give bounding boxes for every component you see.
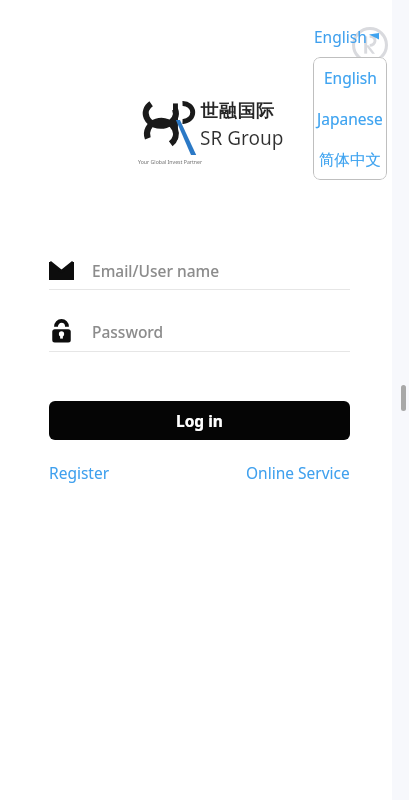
button[interactable]: English bbox=[313, 57, 387, 98]
other: Password bbox=[49, 320, 74, 343]
staticText: Password bbox=[92, 321, 164, 342]
button[interactable]: 简体中文 bbox=[313, 139, 387, 180]
staticText: Your Global Invest Partner bbox=[138, 158, 203, 165]
button[interactable]: Log in bbox=[49, 401, 350, 440]
staticText: English bbox=[324, 67, 377, 88]
button[interactable]: Japanese bbox=[313, 98, 387, 139]
button[interactable]: Online Service bbox=[246, 462, 350, 483]
staticText: 简体中文 bbox=[319, 150, 381, 170]
button[interactable]: Email bbox=[49, 252, 349, 289]
staticText: SR Group bbox=[200, 125, 284, 151]
staticText: Japanese bbox=[317, 108, 383, 129]
staticText: Online Service bbox=[246, 462, 350, 483]
staticText: Log in bbox=[176, 410, 223, 431]
button[interactable]: Register bbox=[49, 462, 110, 483]
button[interactable]: Password bbox=[49, 313, 349, 350]
other: Email bbox=[49, 262, 74, 280]
staticText: 世融国际 bbox=[200, 100, 274, 123]
staticText: Register bbox=[49, 462, 110, 483]
button[interactable]: English bbox=[312, 24, 381, 49]
staticText: Email/User name bbox=[92, 260, 220, 281]
staticText: English bbox=[314, 26, 367, 47]
